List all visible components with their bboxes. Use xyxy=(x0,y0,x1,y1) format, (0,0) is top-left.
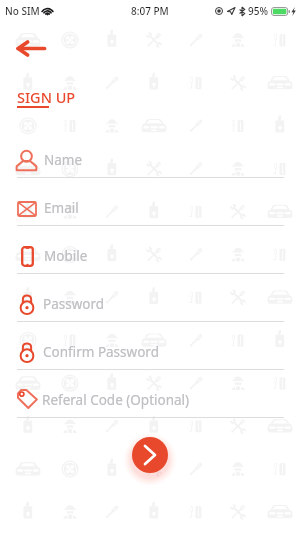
staticText: Referal Code (Optional) xyxy=(42,391,190,409)
button[interactable]: Name xyxy=(0,130,300,178)
staticText: SIGN UP xyxy=(17,87,76,107)
staticText: Password xyxy=(43,295,105,313)
button[interactable]: Mobile xyxy=(0,226,300,274)
button[interactable]: Next xyxy=(132,437,168,473)
staticText: 8:07 PM xyxy=(131,4,169,18)
button[interactable]: Email xyxy=(0,178,300,226)
staticText: Email xyxy=(44,199,79,217)
button[interactable]: Back xyxy=(10,36,51,61)
staticText: No SIM xyxy=(5,4,40,18)
button[interactable]: Referal Code (Optional) xyxy=(0,370,300,418)
staticText: Name xyxy=(44,151,83,169)
staticText: 95% xyxy=(248,4,268,18)
staticText: Mobile xyxy=(44,247,88,265)
button[interactable]: Password xyxy=(0,274,300,322)
button[interactable]: Confirm Password xyxy=(0,322,300,370)
staticText: Confirm Password xyxy=(43,343,159,361)
